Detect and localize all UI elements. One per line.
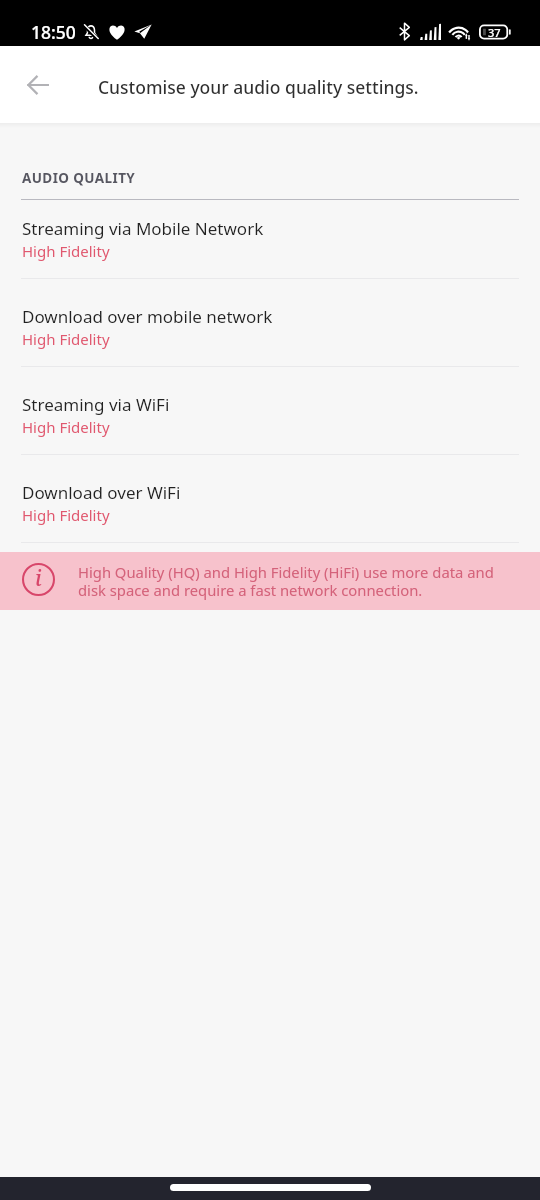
staticText: High Fidelity: [22, 505, 110, 525]
staticText: i: [35, 564, 42, 593]
button[interactable]: Streaming via WiFi: [0, 367, 540, 455]
staticText: Customise your audio quality settings.: [98, 75, 419, 99]
staticText: AUDIO QUALITY: [22, 169, 136, 187]
staticText: High Fidelity: [22, 417, 110, 437]
staticText: 37: [488, 25, 501, 40]
staticText: High Fidelity: [22, 329, 110, 349]
button[interactable]: Download over WiFi: [0, 455, 540, 543]
button[interactable]: Download over mobile network: [0, 279, 540, 367]
staticText: Download over mobile network: [22, 305, 273, 328]
staticText: High Quality (HQ) and High Fidelity (HiF…: [78, 562, 500, 600]
staticText: Streaming via Mobile Network: [22, 217, 264, 240]
staticText: 18:50: [31, 20, 76, 39]
button[interactable]: Streaming via Mobile Network: [0, 200, 540, 279]
staticText: Streaming via WiFi: [22, 393, 170, 416]
button[interactable]: Back: [14, 61, 62, 109]
staticText: Download over WiFi: [22, 481, 181, 504]
staticText: High Fidelity: [22, 241, 110, 261]
button[interactable]: i: [0, 552, 540, 610]
